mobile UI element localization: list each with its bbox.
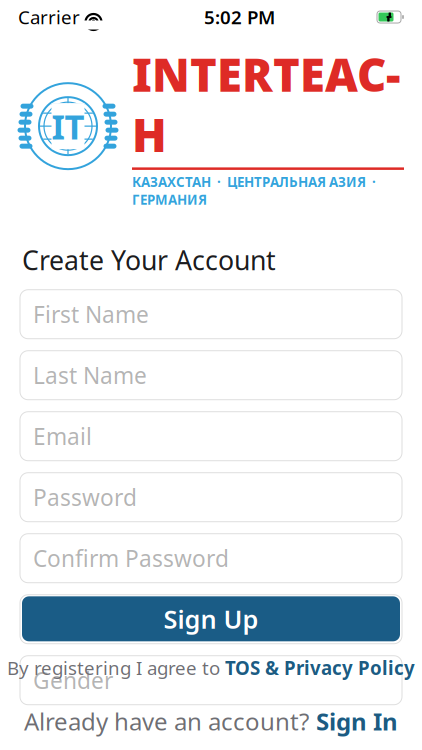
staticText: Gender <box>33 665 113 695</box>
staticText: Phone Number <box>33 604 196 634</box>
staticText: Email <box>33 421 92 451</box>
staticText: By registering I agree to <box>7 655 220 680</box>
staticText: INTERTEACH <box>132 44 400 164</box>
staticText: Confirm Password <box>33 543 229 573</box>
button[interactable]: Email <box>20 412 402 461</box>
staticText: IT <box>51 103 84 149</box>
button[interactable]: Gender <box>20 656 402 705</box>
staticText: КАЗАХСТАН · ЦЕНТРАЛЬНАЯ АЗИЯ · ГЕРМАНИЯ <box>132 173 379 208</box>
button[interactable]: Confirm Password <box>20 534 402 583</box>
staticText: Create Your Account <box>22 242 276 278</box>
staticText: Already have an account? <box>24 705 309 737</box>
button[interactable]: Password <box>20 473 402 522</box>
button[interactable]: Last Name <box>20 351 402 400</box>
button[interactable]: Already have an account? <box>0 700 422 742</box>
staticText: TOS & Privacy Policy <box>225 655 415 680</box>
button[interactable]: Phone Number <box>20 595 402 644</box>
staticText: First Name <box>33 299 149 329</box>
button[interactable]: Sign Up <box>22 596 400 641</box>
staticText: Sign In <box>316 705 398 737</box>
staticText: Last Name <box>33 360 147 390</box>
button[interactable]: By registering I agree to <box>0 649 422 686</box>
staticText: Sign Up <box>163 602 258 636</box>
button[interactable]: First Name <box>20 290 402 339</box>
staticText: 5:02 PM <box>204 5 275 29</box>
staticText: Carrier <box>18 5 80 29</box>
staticText: Password <box>33 482 137 512</box>
